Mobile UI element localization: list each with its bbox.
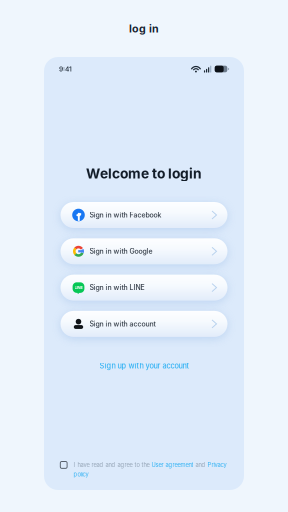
staticText: Welcome to login bbox=[86, 165, 202, 182]
staticText: policy bbox=[73, 471, 88, 478]
button[interactable]: Sign up with your account bbox=[99, 361, 188, 371]
button[interactable]: Sign in with account bbox=[60, 311, 227, 337]
staticText: Sign in with Google bbox=[89, 247, 152, 255]
staticText: LINE bbox=[74, 285, 82, 290]
button[interactable]: Sign in with Facebook bbox=[60, 202, 227, 228]
staticText: Sign in with Facebook bbox=[89, 211, 161, 219]
button[interactable]: Agree to terms bbox=[60, 461, 67, 468]
button[interactable]: policy bbox=[73, 471, 88, 478]
button[interactable]: Sign in with Google bbox=[60, 238, 227, 264]
staticText: Sign up with your account bbox=[99, 361, 188, 370]
button[interactable]: Privacy bbox=[207, 461, 226, 468]
staticText: Sign in with LINE bbox=[89, 283, 144, 292]
staticText: I have read and agree to the bbox=[73, 461, 151, 468]
staticText: User agreement bbox=[151, 461, 193, 468]
button[interactable]: User agreement bbox=[151, 461, 193, 468]
staticText: log in bbox=[129, 22, 159, 35]
staticText: Privacy bbox=[207, 461, 226, 468]
button[interactable]: LINE bbox=[60, 275, 227, 301]
staticText: and bbox=[193, 461, 207, 468]
staticText: 9:41 bbox=[59, 65, 72, 73]
staticText: Sign in with account bbox=[89, 320, 155, 328]
